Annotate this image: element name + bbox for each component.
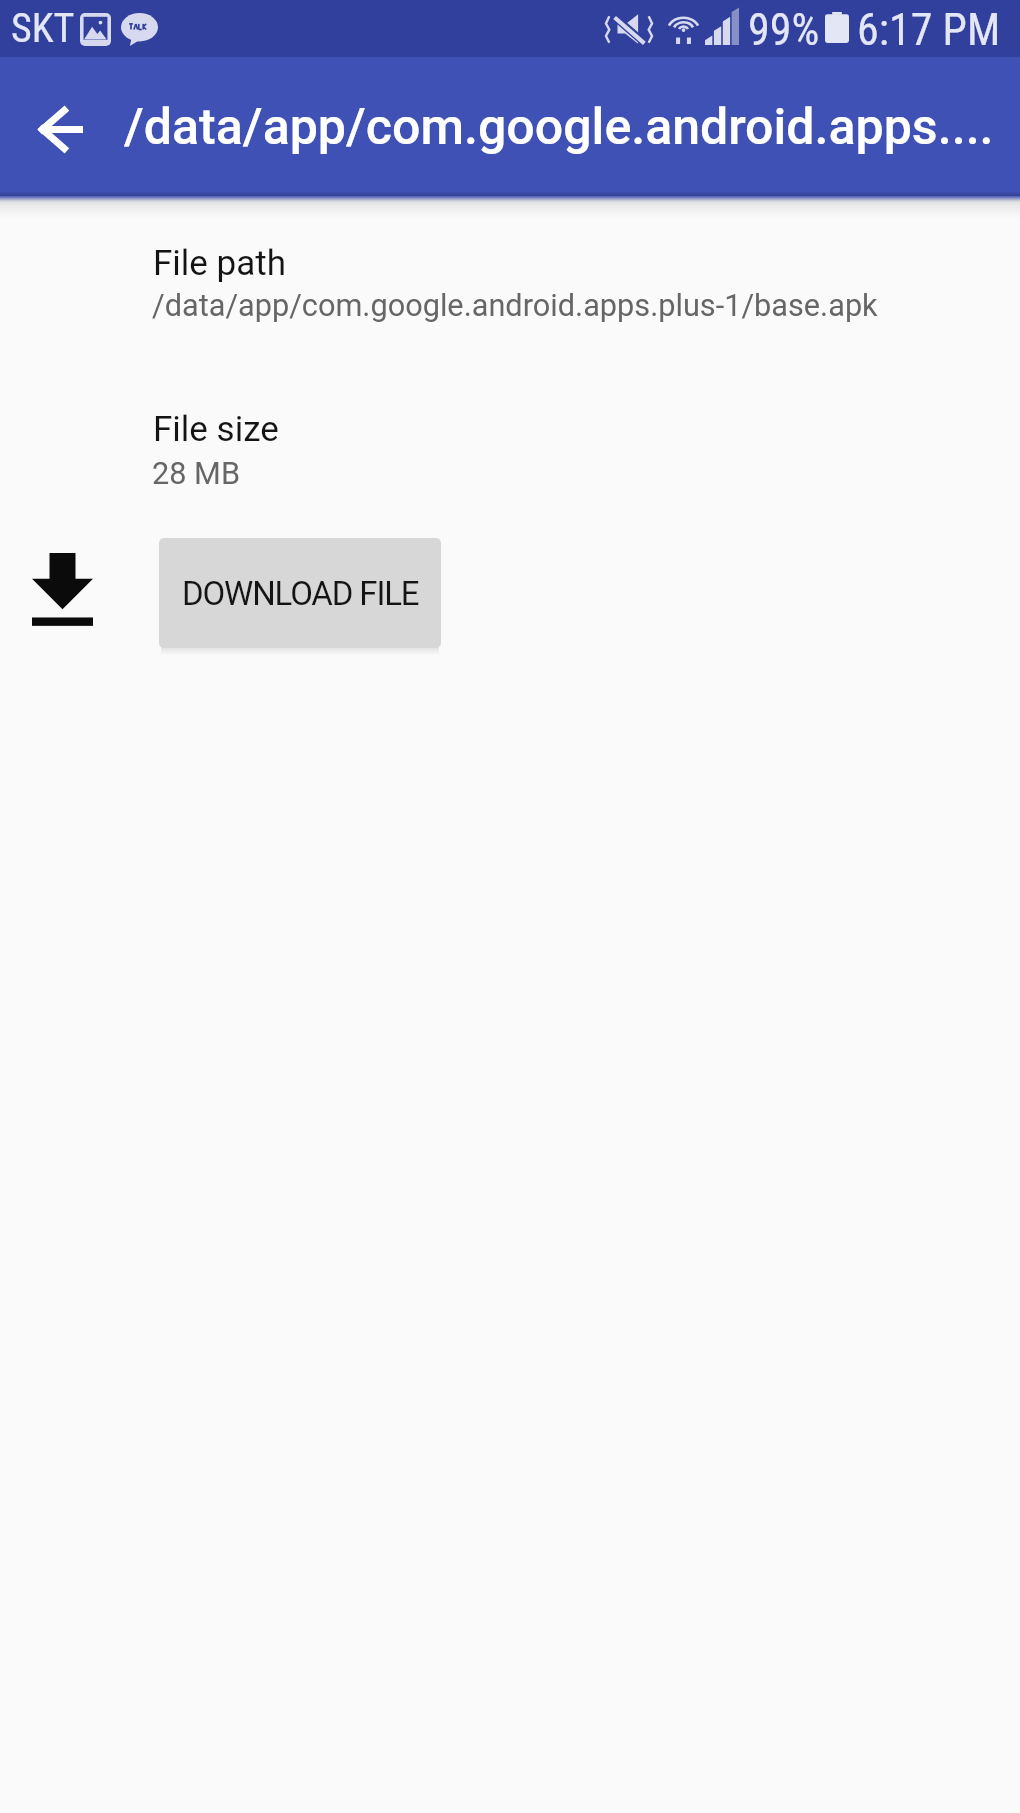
staticText: /data/app/com.google.android.apps.... [124,98,994,157]
button[interactable]: DOWNLOAD FILE [159,538,441,648]
button[interactable]: Download [32,553,93,626]
staticText: 99% [748,4,820,56]
staticText: DOWNLOAD FILE [182,574,419,613]
staticText: 28 MB [152,456,241,492]
button[interactable]: Navigate up [13,81,109,177]
staticText: 6:17 PM [857,4,1001,56]
staticText: File size [153,409,279,450]
staticText: /data/app/com.google.android.apps.plus-1… [152,288,878,324]
staticText: File path [153,243,287,284]
staticText: SKT [11,5,75,52]
